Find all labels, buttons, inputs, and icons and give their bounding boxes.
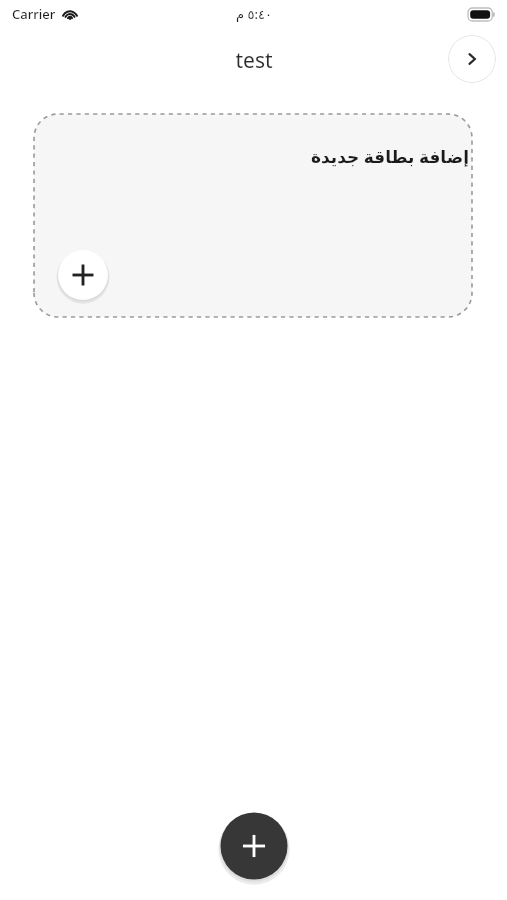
staticText: ٥:٤٠ م xyxy=(236,5,272,23)
button[interactable]: Next xyxy=(448,35,496,83)
staticText: إضافة بطاقة جديدة xyxy=(311,145,469,168)
staticText: test xyxy=(235,46,273,75)
button[interactable]: Add card xyxy=(56,248,110,302)
button[interactable]: Add xyxy=(218,810,290,882)
button[interactable]: إضافة بطاقة جديدة xyxy=(33,113,473,318)
staticText: Carrier xyxy=(12,5,56,23)
